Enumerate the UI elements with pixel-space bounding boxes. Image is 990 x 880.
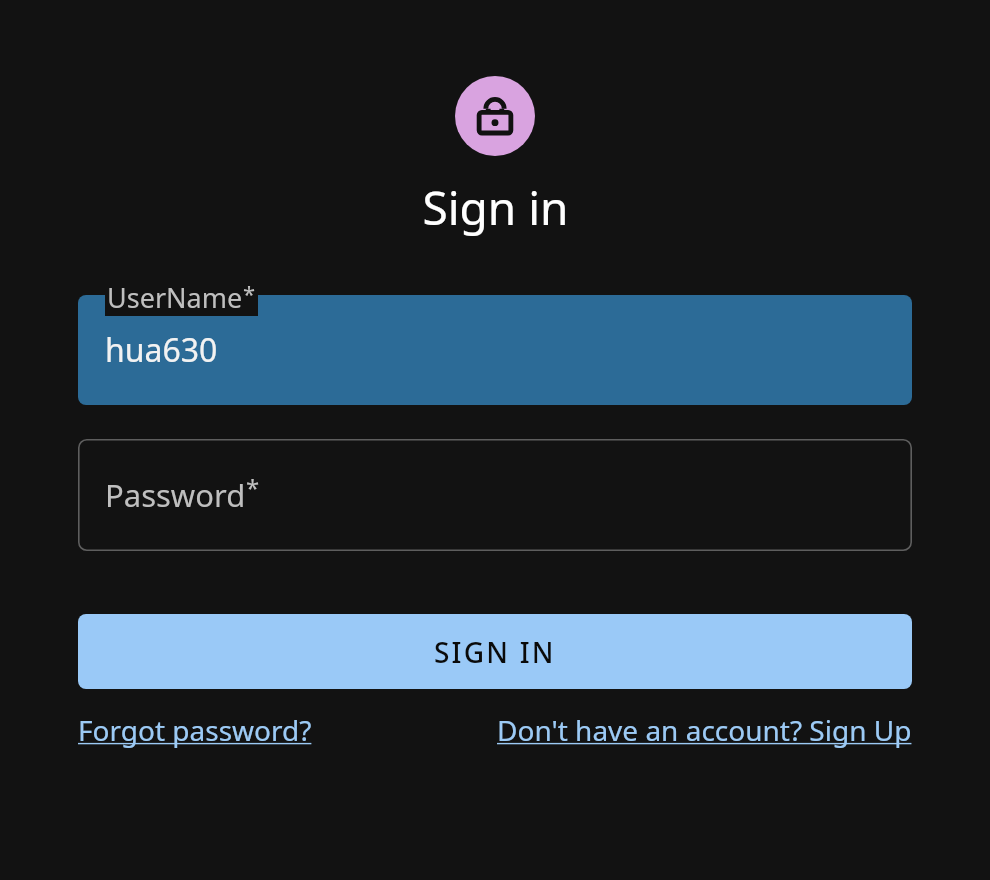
button[interactable]: Don't have an account? Sign Up [497,711,912,749]
staticText: Sign in [422,176,569,239]
button[interactable]: SIGN IN [78,614,912,689]
staticText: Forgot password? [78,711,312,749]
staticText: * [246,471,260,504]
button[interactable]: Forgot password? [78,711,312,749]
staticText: SIGN IN [434,633,556,671]
button[interactable]: Password [78,439,912,551]
staticText: Password [105,474,246,516]
staticText: UserName [107,279,243,316]
button[interactable]: hua630 [78,279,912,405]
staticText: hua630 [105,328,218,372]
other: Secure sign in [472,93,518,139]
staticText: Don't have an account? Sign Up [497,711,912,749]
staticText: * [243,278,256,308]
